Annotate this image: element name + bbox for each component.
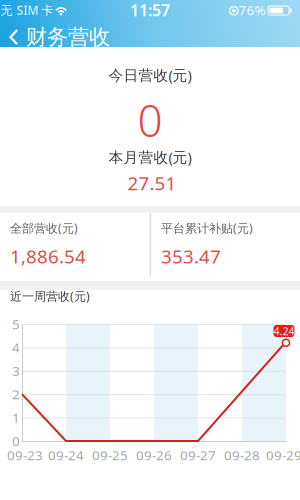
staticText: 0 xyxy=(137,91,162,149)
button[interactable]: 平台累计补贴(元) xyxy=(151,213,300,281)
staticText: 5 xyxy=(12,315,20,333)
staticText: 本月营收(元) xyxy=(108,147,191,167)
staticText: 无 SIM 卡 xyxy=(0,2,53,18)
staticText: 353.47 xyxy=(161,244,221,269)
staticText: 今日营收(元) xyxy=(108,65,191,85)
staticText: 财务营收 xyxy=(26,24,110,50)
staticText: 1 xyxy=(12,409,20,426)
staticText: 11:57 xyxy=(130,0,170,21)
staticText: 0 xyxy=(12,432,20,450)
staticText: 76% xyxy=(238,1,265,19)
staticText: 27.51 xyxy=(127,171,176,195)
staticText: 09-27 xyxy=(180,446,216,464)
staticText: 09-26 xyxy=(136,446,172,464)
staticText: 平台累计补贴(元) xyxy=(161,220,253,236)
staticText: 近一周营收(元) xyxy=(10,288,90,304)
staticText: 2 xyxy=(12,385,20,403)
staticText: 全部营收(元) xyxy=(10,220,78,236)
staticText: 1,886.54 xyxy=(10,244,86,269)
button[interactable]: Back xyxy=(0,24,110,50)
staticText: 09-23 xyxy=(7,446,43,464)
button[interactable]: 全部营收(元) xyxy=(0,213,150,281)
staticText: 09-28 xyxy=(224,446,260,464)
staticText: 09-25 xyxy=(92,446,128,464)
staticText: 09-29 xyxy=(266,446,300,464)
staticText: 4 xyxy=(12,338,20,356)
staticText: 4.24 xyxy=(273,324,294,338)
staticText: 3 xyxy=(12,362,20,380)
staticText: 09-24 xyxy=(48,446,84,464)
